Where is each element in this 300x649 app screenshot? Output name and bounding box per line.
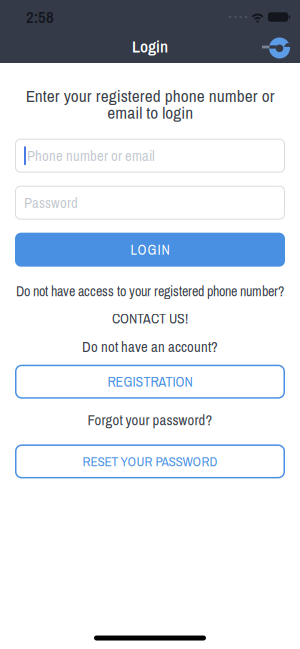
staticText: Do not have an account? (82, 337, 218, 357)
staticText: Forgot your password? (87, 410, 212, 430)
staticText: Login (132, 35, 168, 58)
staticText: REGISTRATION (107, 372, 192, 391)
button[interactable]: RESET YOUR PASSWORD (15, 444, 285, 478)
button[interactable] (262, 37, 290, 59)
button[interactable]: Do not have access to your registered ph… (16, 282, 284, 301)
staticText: L O G I N (130, 240, 169, 259)
staticText: Do not have access to your registered ph… (16, 282, 284, 301)
staticText: Enter your registered phone number or em… (25, 84, 274, 124)
staticText: CONTACT US! (112, 309, 188, 328)
staticText: Phone number or email (27, 146, 155, 166)
staticText: 2:58 (26, 6, 54, 28)
staticText: Password (24, 193, 78, 213)
button[interactable]: REGISTRATION (15, 365, 285, 399)
button[interactable]: L O G I N (15, 233, 285, 267)
staticText: RESET YOUR PASSWORD (82, 452, 217, 470)
button[interactable]: CONTACT US! (112, 309, 188, 328)
